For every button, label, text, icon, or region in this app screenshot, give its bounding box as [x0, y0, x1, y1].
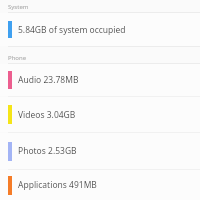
staticText: Audio 23.78MB	[18, 74, 79, 86]
button[interactable]: Videos 3.04GB	[0, 97, 200, 132]
button[interactable]: Photos 2.53GB	[0, 133, 200, 169]
staticText: Applications 491MB	[18, 179, 97, 191]
staticText: Photos 2.53GB	[18, 145, 77, 157]
button[interactable]: Audio 23.78MB	[0, 64, 200, 96]
button[interactable]: 5.84GB of system occupied	[0, 13, 200, 46]
button[interactable]: Applications 491MB	[0, 170, 200, 200]
staticText: System	[8, 3, 29, 11]
staticText: Videos 3.04GB	[18, 109, 76, 121]
staticText: Phone	[8, 54, 27, 62]
staticText: 5.84GB of system occupied	[18, 24, 126, 36]
